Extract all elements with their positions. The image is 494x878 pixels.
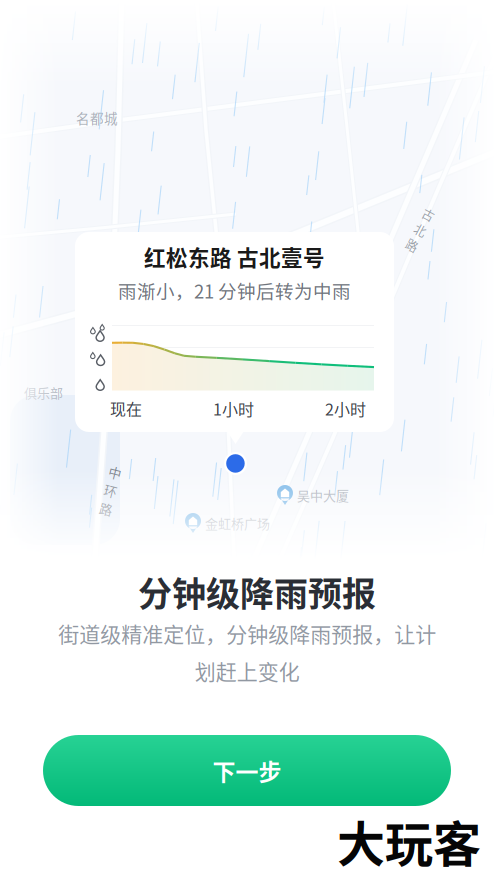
staticText: 吴中大厦 (297, 486, 349, 504)
staticText: 现在 (110, 397, 142, 420)
staticText: 俱乐部 (24, 383, 63, 402)
staticText: 下一步 (212, 754, 281, 787)
staticText: 2小时 (325, 397, 366, 420)
staticText: 中 环 路 (104, 462, 117, 518)
staticText: 名都城 (76, 108, 118, 127)
staticText: 雨渐小，21 分钟后转为中雨 (118, 277, 351, 304)
staticText: 1小时 (213, 397, 254, 420)
staticText: 红松东路 古北壹号 (144, 241, 325, 272)
staticText: 古 北 路 (414, 204, 426, 256)
staticText: 街道级精准定位，分钟级降雨预报，让计 划赶上变化 (58, 618, 436, 686)
button[interactable]: 下一步 (43, 735, 451, 806)
staticText: 金虹桥广场 (205, 514, 270, 532)
staticText: 分钟级降雨预报 (138, 567, 376, 616)
staticText: 大玩客 (337, 806, 481, 875)
